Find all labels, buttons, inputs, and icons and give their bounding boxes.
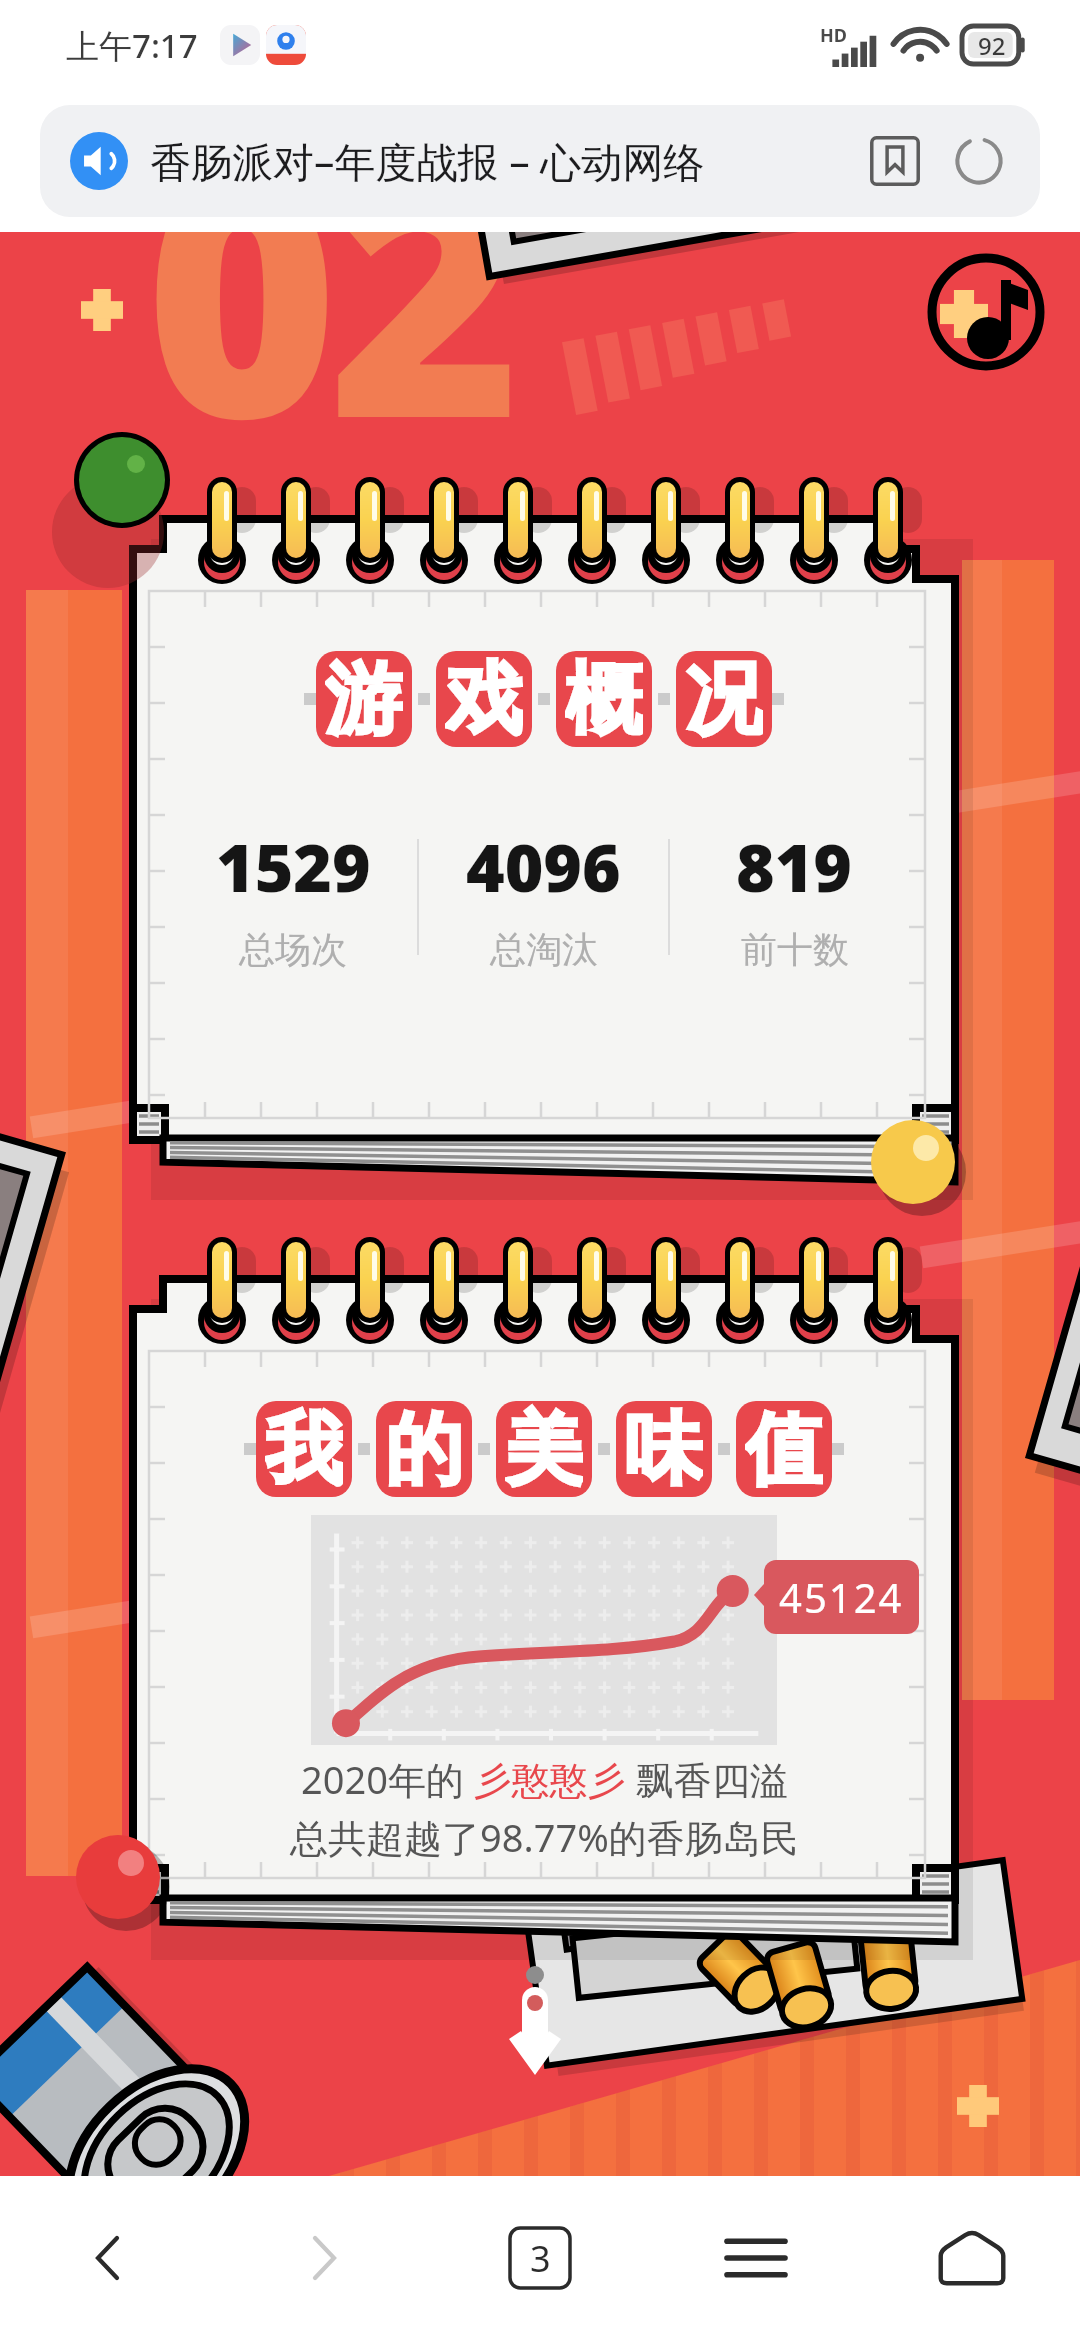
staticText: 美 (505, 1401, 583, 1497)
button[interactable]: Home (864, 2230, 1080, 2286)
staticText: 总场次 (239, 927, 347, 972)
button[interactable]: Back (0, 2233, 216, 2283)
staticText: 02 (145, 232, 512, 513)
staticText: 45124 (779, 1570, 904, 1624)
button[interactable]: Bookmark (868, 134, 922, 188)
staticText: 总淘汰 (490, 927, 598, 972)
staticText: 值 (745, 1401, 823, 1497)
staticText: 游 (325, 651, 403, 747)
staticText: 戏 (445, 651, 523, 747)
button[interactable]: Forward (216, 2233, 432, 2283)
staticText: 4096 (466, 821, 621, 911)
staticText: 92 (978, 29, 1006, 62)
button[interactable]: Tabs (432, 2228, 648, 2288)
button[interactable]: 香肠派对–年度战报 – 心动网络 (40, 105, 1040, 217)
staticText: 1529 (216, 821, 371, 911)
button[interactable]: Menu (648, 2238, 864, 2278)
staticText: 我 (265, 1401, 343, 1497)
staticText: 味 (625, 1401, 703, 1497)
staticText: 819 (736, 821, 853, 911)
staticText: 概 (565, 651, 643, 747)
staticText: 香肠派对–年度战报 – 心动网络 (150, 133, 705, 189)
staticText: 2020年的 彡憨憨彡 飘香四溢 (301, 1753, 788, 1805)
staticText: 上午7:17 (66, 23, 198, 68)
button[interactable]: Refresh (952, 134, 1006, 188)
staticText: 的 (385, 1401, 463, 1497)
staticText: 总共超越了98.77%的香肠岛民 (290, 1811, 799, 1863)
staticText: 3 (530, 2234, 551, 2283)
staticText: 前十数 (741, 927, 849, 972)
staticText: HD (820, 23, 847, 48)
staticText: 况 (685, 651, 763, 747)
